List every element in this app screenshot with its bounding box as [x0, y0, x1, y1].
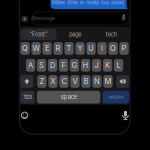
staticText: O: [110, 44, 116, 53]
staticText: Q: [22, 44, 28, 53]
staticText: C: [61, 77, 66, 86]
staticText: K: [105, 61, 110, 70]
staticText: I: [101, 44, 103, 53]
staticText: 123: [23, 94, 31, 100]
staticText: E: [45, 44, 49, 53]
staticText: G: [72, 61, 78, 70]
staticText: D: [50, 61, 55, 70]
staticText: A: [28, 61, 33, 70]
staticText: N: [94, 77, 100, 86]
staticText: U: [88, 44, 94, 53]
staticText: return: [108, 93, 123, 100]
staticText: L: [117, 61, 121, 70]
staticText: V: [72, 77, 77, 86]
staticText: S: [39, 61, 44, 70]
staticText: Y: [78, 44, 83, 53]
staticText: tech: [106, 31, 117, 38]
staticText: B: [83, 77, 88, 86]
staticText: R: [55, 44, 60, 53]
staticText: F: [61, 61, 65, 70]
staticText: W: [32, 44, 39, 53]
staticText: J: [95, 61, 99, 70]
staticText: space: [61, 93, 77, 100]
staticText: T: [67, 44, 72, 53]
staticText: page: [69, 31, 81, 38]
staticText: Z: [39, 77, 44, 86]
staticText: M: [104, 77, 111, 86]
staticText: Miles (this is really too slow): [52, 0, 124, 6]
staticText: X: [50, 77, 55, 86]
staticText: Message: [32, 15, 55, 21]
staticText: P: [122, 44, 127, 53]
staticText: “Front”: [30, 31, 47, 38]
staticText: H: [83, 61, 89, 70]
